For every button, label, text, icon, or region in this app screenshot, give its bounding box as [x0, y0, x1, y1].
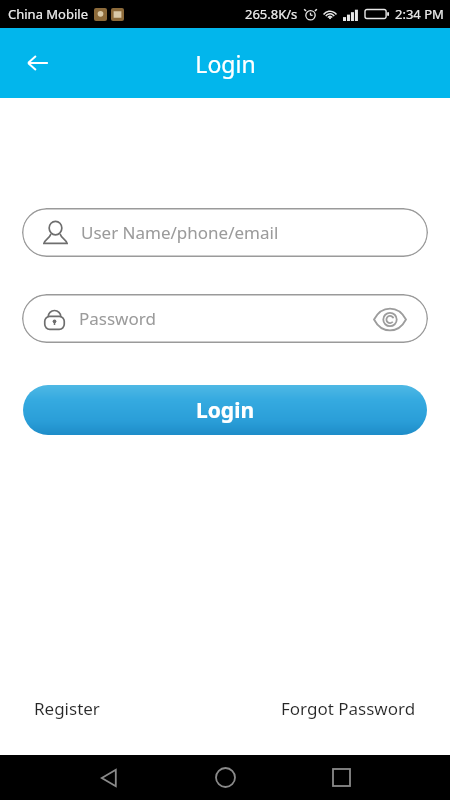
- staticText: Forgot Password: [281, 697, 416, 720]
- staticText: Password: [79, 307, 370, 330]
- button[interactable]: Back: [85, 755, 133, 800]
- staticText: 265.8K/s: [245, 5, 298, 23]
- button[interactable]: Forgot Password: [277, 691, 420, 726]
- button[interactable]: Show password: [370, 302, 410, 336]
- button[interactable]: Home: [201, 755, 249, 800]
- staticText: 2:34 PM: [395, 5, 444, 23]
- button[interactable]: Recent apps: [317, 755, 365, 800]
- staticText: Login: [195, 48, 256, 79]
- button[interactable]: User Name/phone/email: [22, 208, 428, 257]
- button[interactable]: Login: [23, 385, 427, 435]
- staticText: Login: [196, 396, 255, 425]
- staticText: China Mobile: [8, 5, 89, 23]
- button[interactable]: Register: [30, 691, 104, 726]
- staticText: Register: [34, 697, 100, 720]
- button[interactable]: Back: [14, 39, 62, 87]
- button[interactable]: Password: [22, 294, 428, 343]
- staticText: User Name/phone/email: [81, 221, 410, 244]
